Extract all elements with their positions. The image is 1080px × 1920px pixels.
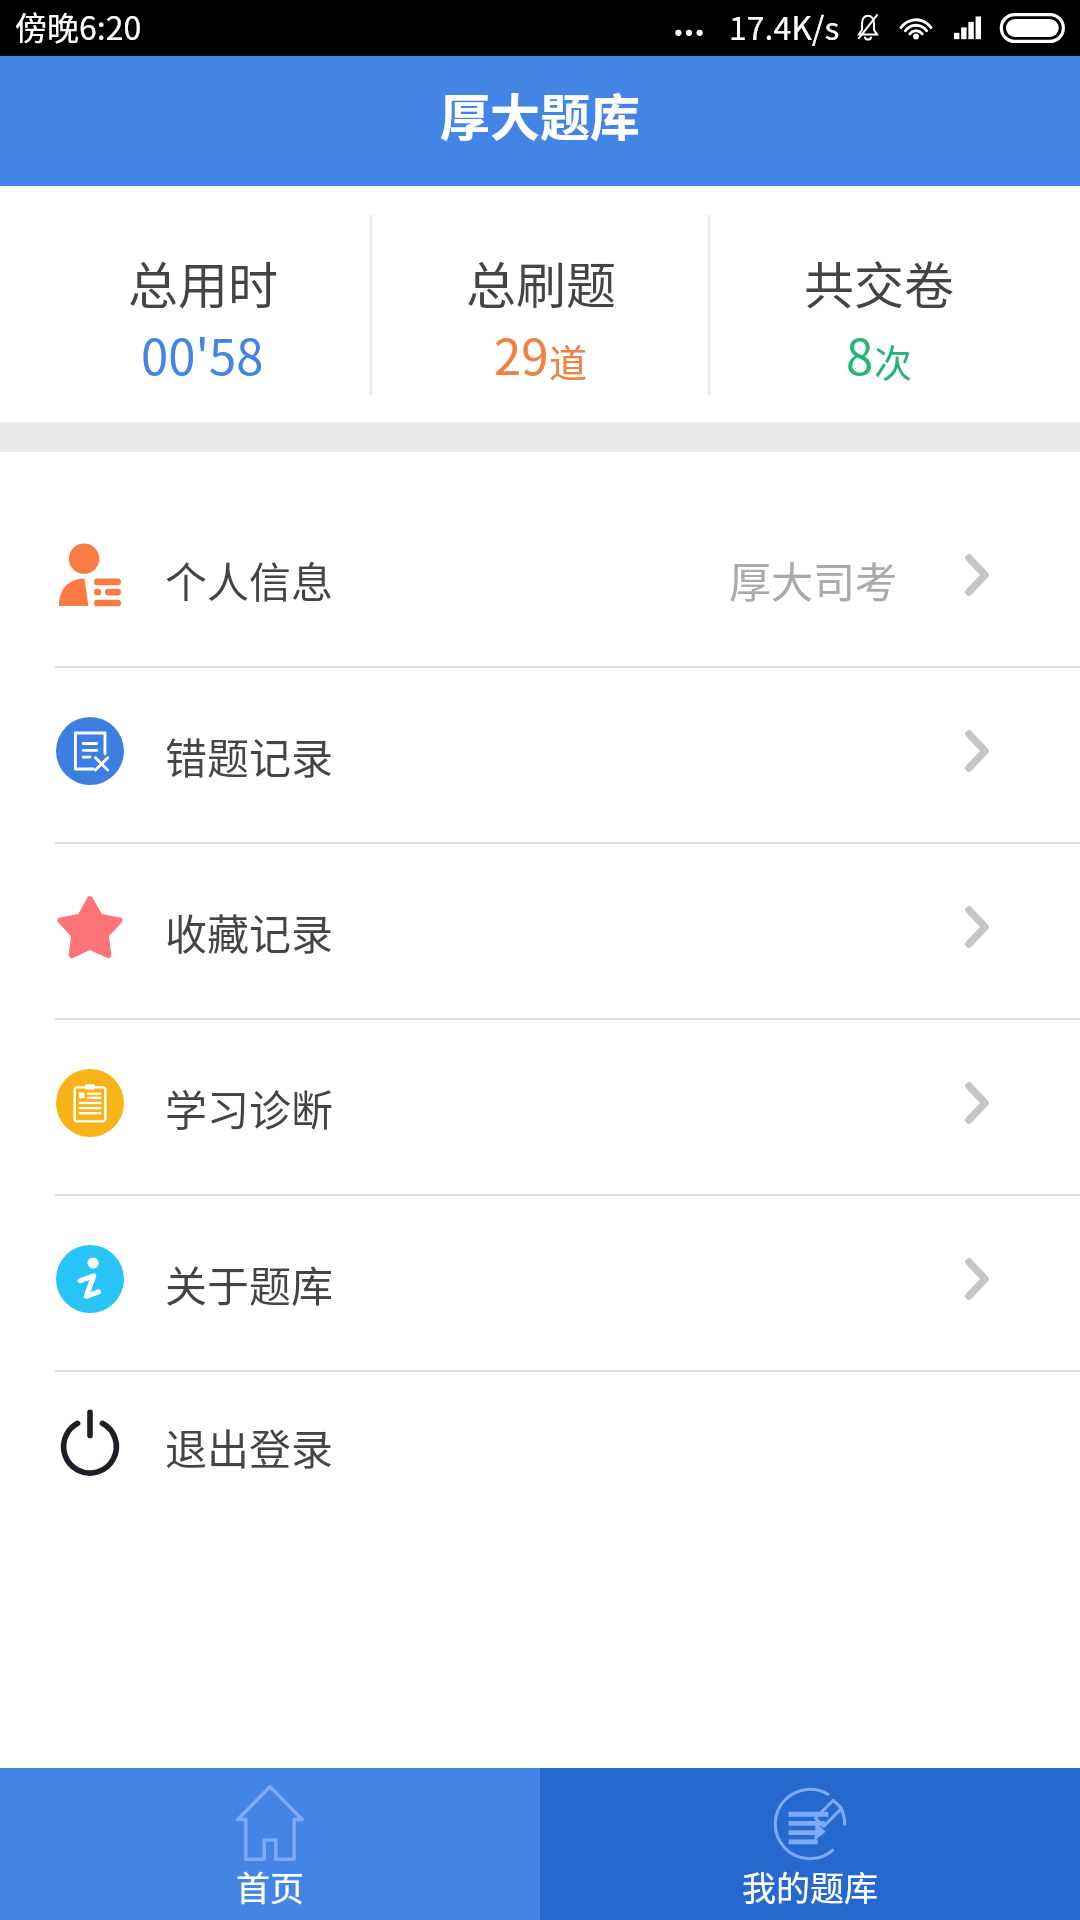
staticText: 收藏记录 [165,901,334,962]
staticText: 道 [549,333,588,388]
staticText: 傍晚6:20 [15,3,142,49]
staticText: 学习诊断 [165,1077,334,1138]
staticText: 关于题库 [165,1253,334,1314]
button[interactable]: 错题记录 [0,668,1080,842]
staticText: 退出登录 [165,1416,334,1477]
staticText: 29 [494,318,549,389]
staticText: 次 [874,333,913,388]
button[interactable]: 学习诊断 [0,1020,1080,1194]
button[interactable]: 首页 [0,1768,540,1920]
staticText: 厚大题库 [440,78,640,150]
button[interactable]: 我的题库 [540,1768,1080,1920]
staticText: 总用时 [128,246,278,318]
staticText: 首页 [236,1862,304,1911]
button[interactable]: 个人信息 [0,492,1080,666]
staticText: 厚大司考 [729,549,898,610]
staticText: 总刷题 [466,246,616,318]
staticText: 我的题库 [742,1862,878,1911]
staticText: 8 [846,318,874,389]
staticText: 00'58 [141,318,264,389]
button[interactable]: 收藏记录 [0,844,1080,1018]
button[interactable]: 关于题库 [0,1196,1080,1370]
staticText: 共交卷 [804,246,954,318]
staticText: 个人信息 [165,549,334,610]
button[interactable]: 退出登录 [0,1372,1080,1520]
staticText: 17.4K/s [729,3,840,49]
staticText: 错题记录 [165,725,334,786]
